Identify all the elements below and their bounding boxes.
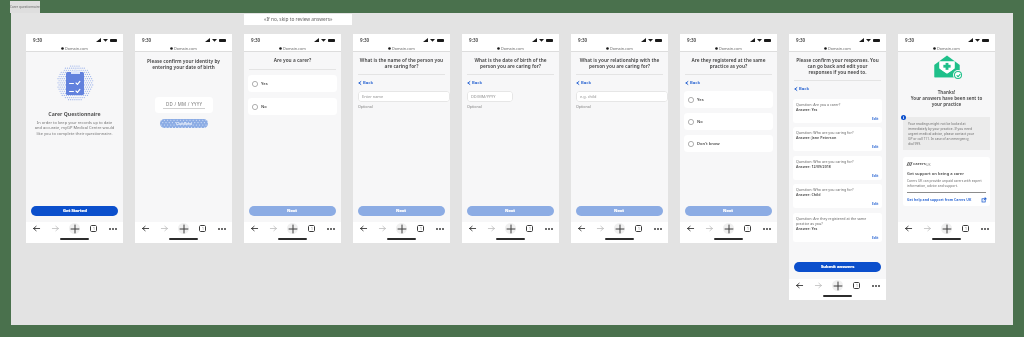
staticText: Get support on being a carer [907, 171, 964, 176]
staticText: Answer: Jane Peterson [796, 135, 837, 140]
staticText: Get help and support from Carers UK [907, 197, 972, 202]
button[interactable]: Back [685, 223, 696, 234]
button[interactable]: New tab [69, 223, 80, 234]
button[interactable]: More options [325, 223, 336, 234]
button[interactable]: Enter name [358, 91, 450, 102]
button[interactable]: Get Started [31, 206, 118, 216]
staticText: i [903, 116, 904, 120]
button[interactable]: New tab [505, 223, 516, 234]
staticText: Domain.com [392, 46, 415, 51]
button[interactable]: Tabs [524, 223, 535, 234]
button[interactable]: Get help and support from Carers UK [907, 197, 986, 202]
button[interactable]: Forward [159, 223, 170, 234]
button[interactable]: No [248, 98, 337, 115]
staticText: 9:30 [578, 37, 588, 43]
button[interactable]: Question: Who are you caring for? [793, 184, 882, 208]
button[interactable]: Back [576, 223, 587, 234]
button[interactable]: Question: Are they registered at the sam… [793, 213, 882, 242]
button[interactable]: Tabs [306, 223, 317, 234]
button[interactable]: More options [434, 223, 445, 234]
button[interactable]: More options [107, 223, 118, 234]
button[interactable]: Forward [377, 223, 388, 234]
button[interactable]: Back [794, 280, 805, 291]
staticText: No [697, 119, 703, 124]
button[interactable]: Next [467, 206, 554, 216]
button[interactable]: Back [794, 85, 810, 93]
button[interactable]: More options [652, 223, 663, 234]
staticText: Question: Who are you caring for? [796, 130, 854, 135]
button[interactable]: More options [543, 223, 554, 234]
staticText: Edit [872, 173, 879, 177]
staticText: Domain.com [719, 46, 742, 51]
staticText: Question: Who are you caring for? [796, 187, 854, 192]
button[interactable]: More options [216, 223, 227, 234]
button[interactable]: Confirm [160, 119, 208, 128]
staticText: Enter name [362, 94, 384, 99]
button[interactable]: Carer questionnaire [10, 1, 40, 13]
button[interactable]: New tab [723, 223, 734, 234]
staticText: Please confirm your identity by entering… [139, 58, 228, 70]
button[interactable]: Tabs [88, 223, 99, 234]
staticText: What is the name of the person you are c… [357, 57, 446, 69]
button[interactable]: Back [467, 79, 483, 87]
button[interactable]: New tab [396, 223, 407, 234]
button[interactable]: New tab [614, 223, 625, 234]
button[interactable]: e.g. child [576, 91, 668, 102]
button[interactable]: Question: Who are you caring for? [793, 156, 882, 180]
button[interactable]: Back [467, 223, 478, 234]
button[interactable]: Yes [248, 75, 337, 92]
button[interactable]: Tabs [742, 223, 753, 234]
button[interactable]: Forward [922, 223, 933, 234]
staticText: Optional [358, 104, 373, 109]
button[interactable]: Question: Who are you caring for? [793, 127, 882, 151]
staticText: Don't know [697, 141, 720, 146]
staticText: 1 [856, 283, 858, 288]
button[interactable]: Back [903, 223, 914, 234]
button[interactable]: Next [358, 206, 445, 216]
button[interactable]: Next [685, 206, 772, 216]
button[interactable]: Back [358, 79, 374, 87]
button[interactable]: Next [576, 206, 663, 216]
button[interactable]: Forward [813, 280, 824, 291]
button[interactable]: Forward [268, 223, 279, 234]
button[interactable]: Question: Are you a carer? [793, 99, 882, 123]
staticText: Thanks! Your answers have been sent to y… [905, 89, 988, 107]
staticText: Back [690, 80, 701, 86]
button[interactable]: Submit answers [794, 262, 881, 272]
button[interactable]: More options [870, 280, 881, 291]
button[interactable]: Tabs [960, 223, 971, 234]
button[interactable]: DD / MM / YYYY [155, 97, 213, 113]
button[interactable]: New tab [287, 223, 298, 234]
button[interactable]: Next [249, 206, 336, 216]
button[interactable]: Forward [595, 223, 606, 234]
button[interactable]: DD/MM/YYYY [467, 91, 513, 102]
staticText: «If no, skip to review answers» [264, 16, 333, 23]
staticText: Back [799, 86, 810, 92]
button[interactable]: New tab [941, 223, 952, 234]
button[interactable]: Tabs [851, 280, 862, 291]
button[interactable]: Yes [684, 91, 773, 108]
button[interactable]: Back [140, 223, 151, 234]
button[interactable]: Tabs [415, 223, 426, 234]
button[interactable]: Forward [704, 223, 715, 234]
button[interactable]: Forward [50, 223, 61, 234]
button[interactable]: Forward [486, 223, 497, 234]
button[interactable]: More options [979, 223, 990, 234]
staticText: Optional [576, 104, 591, 109]
button[interactable]: Back [31, 223, 42, 234]
staticText: Please confirm your responses. You can g… [793, 57, 882, 75]
button[interactable]: More options [761, 223, 772, 234]
staticText: Submit answers [821, 264, 855, 270]
button[interactable]: Tabs [197, 223, 208, 234]
button[interactable]: New tab [832, 280, 843, 291]
button[interactable]: Back [249, 223, 260, 234]
button[interactable]: Tabs [633, 223, 644, 234]
button[interactable]: Don't know [684, 135, 773, 152]
button[interactable]: Back [576, 79, 592, 87]
button[interactable]: New tab [178, 223, 189, 234]
button[interactable]: Back [358, 223, 369, 234]
staticText: No [261, 104, 267, 109]
button[interactable]: Back [685, 79, 701, 87]
staticText: carers [913, 161, 926, 167]
button[interactable]: No [684, 113, 773, 130]
